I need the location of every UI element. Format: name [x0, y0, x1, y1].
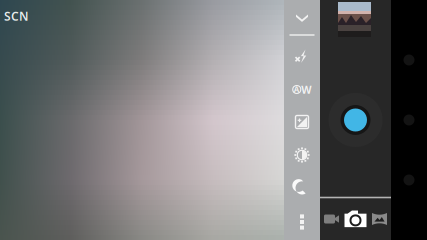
button[interactable]: Panorama mode — [368, 199, 391, 239]
button[interactable]: Recent apps — [391, 167, 427, 193]
button[interactable]: Video mode — [320, 199, 343, 239]
button[interactable]: Collapse settings — [284, 8, 320, 28]
button[interactable]: Brightness — [284, 142, 320, 168]
button[interactable]: Flash off — [284, 43, 320, 69]
button[interactable]: Shutter — [328, 93, 382, 147]
staticText: A — [294, 84, 300, 95]
button[interactable]: Photo mode — [343, 199, 368, 239]
staticText: SCN — [4, 8, 29, 24]
button[interactable]: Gallery — [338, 2, 371, 37]
staticText: W — [301, 82, 311, 97]
button[interactable]: Back — [391, 47, 427, 73]
button[interactable]: Home — [391, 107, 427, 133]
button[interactable]: Exposure compensation — [284, 109, 320, 135]
button[interactable]: Night mode — [284, 175, 320, 201]
button[interactable]: White balance — [284, 76, 320, 102]
button[interactable]: More options — [284, 209, 320, 235]
